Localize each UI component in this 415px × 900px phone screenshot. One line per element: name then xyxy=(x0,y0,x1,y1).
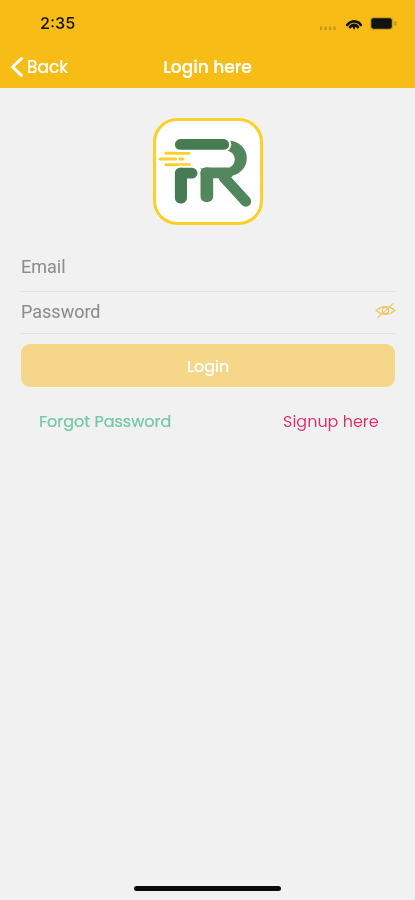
staticText: Back xyxy=(27,55,68,79)
button[interactable] xyxy=(20,250,395,291)
button[interactable]: Show password xyxy=(370,296,400,324)
staticText: Signup here xyxy=(283,410,379,432)
staticText: Login here xyxy=(0,55,415,79)
button[interactable]: Signup here xyxy=(275,406,387,436)
staticText: Forgot Password xyxy=(39,410,172,432)
staticText: Email xyxy=(21,256,66,277)
button[interactable]: Login xyxy=(21,344,395,387)
staticText: 2:35 xyxy=(40,13,76,32)
button[interactable]: Forgot Password xyxy=(31,406,180,436)
staticText: Password xyxy=(21,301,101,322)
button[interactable] xyxy=(20,295,360,333)
staticText: Login xyxy=(187,355,230,377)
button[interactable]: Back xyxy=(4,50,78,84)
